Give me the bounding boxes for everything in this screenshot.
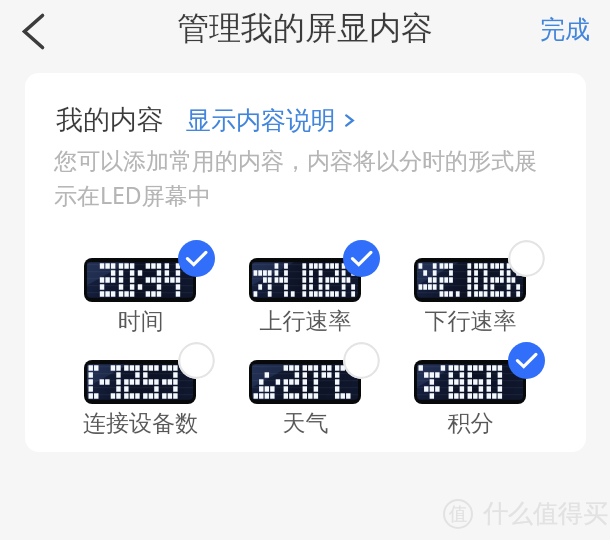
staticText: 上行速率: [240, 307, 371, 336]
staticText: 天气: [240, 409, 371, 438]
button[interactable]: Not selected: [508, 240, 545, 277]
button[interactable]: Selected: [343, 240, 380, 277]
button[interactable]: Selected: [178, 240, 215, 277]
staticText: 值: [449, 503, 467, 526]
staticText: 我的内容: [56, 103, 164, 137]
staticText: 完成: [540, 14, 590, 45]
button[interactable]: 显示内容说明: [186, 105, 357, 136]
staticText: 什么值得买: [483, 498, 608, 529]
staticText: 管理我的屏显内容: [177, 8, 433, 48]
staticText: 显示内容说明: [186, 105, 336, 136]
button[interactable]: Not selected: [178, 342, 215, 379]
staticText: 您可以添加常用的内容，内容将以分时的形式展示在LED屏幕中: [54, 147, 550, 211]
staticText: 下行速率: [405, 307, 536, 336]
staticText: 连接设备数: [75, 409, 206, 438]
button[interactable]: Selected: [508, 342, 545, 379]
staticText: 积分: [405, 409, 536, 438]
staticText: 时间: [75, 307, 206, 336]
button[interactable]: 完成: [524, 6, 606, 53]
button[interactable]: Not selected: [343, 342, 380, 379]
button[interactable]: Back: [8, 4, 56, 52]
